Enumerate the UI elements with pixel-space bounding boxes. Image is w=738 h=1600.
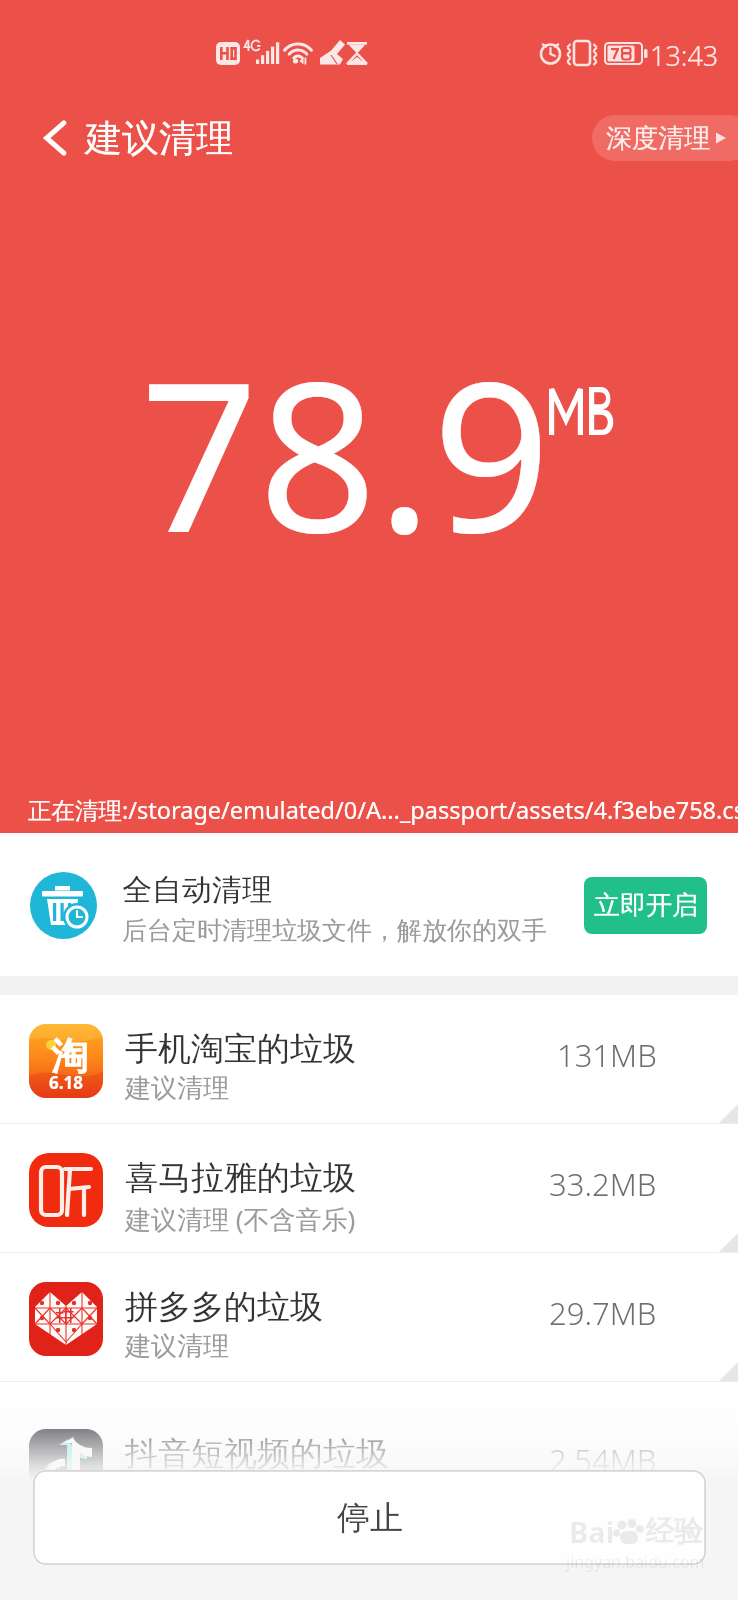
staticText: 78.9 — [140, 311, 551, 593]
staticText: 经验 — [645, 1513, 703, 1550]
staticText: 深度清理 — [606, 122, 710, 155]
button[interactable]: 深度清理 — [592, 115, 738, 161]
button[interactable]: 停止 — [33, 1470, 706, 1565]
staticText: 淘 — [51, 1033, 88, 1080]
button[interactable]: 喜马拉雅的垃圾 — [0, 1124, 738, 1253]
staticText: 全自动清理 — [122, 871, 272, 909]
button[interactable]: Back — [29, 111, 83, 165]
staticText: 停止 — [337, 1497, 403, 1539]
staticText: 抖音短视频的垃圾 — [125, 1433, 389, 1475]
staticText: 2.54MB — [549, 1439, 657, 1481]
staticText: jingyan.baidu.com — [566, 1551, 705, 1573]
staticText: 6.18 — [49, 1071, 83, 1094]
staticText: 29.7MB — [549, 1292, 657, 1334]
staticText: 建议清理 — [125, 1330, 229, 1363]
staticText: 建议清理 (不含音乐) — [125, 1201, 356, 1237]
staticText: Bai — [569, 1512, 615, 1551]
button[interactable]: 抖音短视频的垃圾 — [0, 1382, 738, 1511]
staticText: 立即开启 — [594, 889, 698, 922]
staticText: 喜马拉雅的垃圾 — [125, 1157, 356, 1199]
button[interactable]: 拼多多的垃圾 — [0, 1253, 738, 1382]
button[interactable]: 淘 — [0, 995, 738, 1124]
staticText: 手机淘宝的垃圾 — [125, 1028, 356, 1070]
staticText: 33.2MB — [549, 1163, 657, 1205]
staticText: 131MB — [557, 1034, 657, 1076]
staticText: 正在清理:/storage/emulated/0/A..._passport/a… — [28, 794, 738, 826]
staticText: 后台定时清理垃圾文件，解放你的双手 — [122, 915, 547, 946]
button[interactable]: 立即开启 — [584, 877, 707, 934]
button[interactable]: 全自动清理 — [0, 833, 738, 976]
staticText: 13:43 — [650, 37, 719, 74]
staticText: 建议清理 — [85, 115, 233, 162]
staticText: 拼多多的垃圾 — [125, 1286, 323, 1328]
staticText: 建议清理 — [125, 1072, 229, 1105]
